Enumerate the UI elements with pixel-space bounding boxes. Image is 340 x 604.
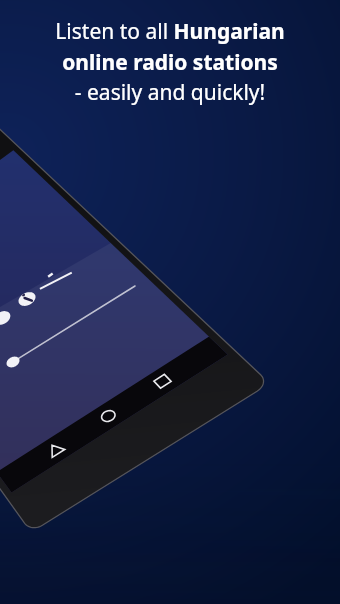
staticText: Listen to all Hungarian online radio sta… [55,17,285,106]
